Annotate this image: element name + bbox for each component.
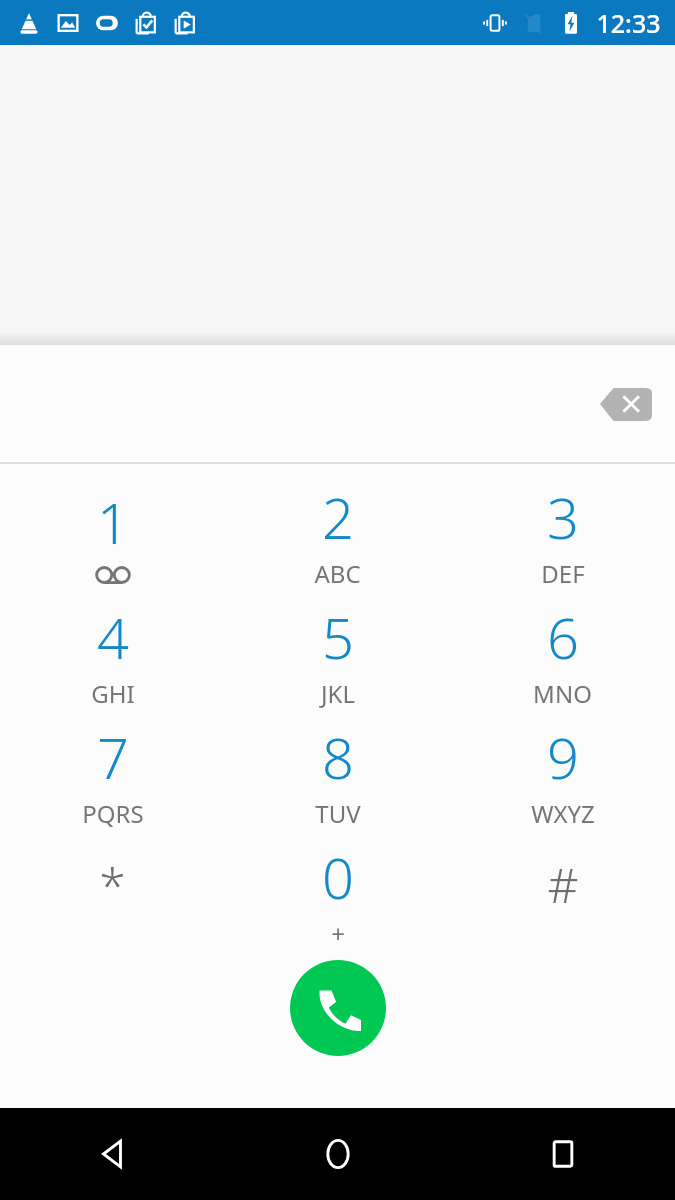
staticText: 5 [322, 599, 354, 675]
staticText: DEF [541, 557, 585, 590]
staticText: ABC [314, 557, 361, 590]
staticText: + [331, 917, 345, 950]
staticText: 1 [97, 484, 129, 560]
button[interactable]: 1 [0, 474, 225, 594]
button[interactable]: 4 [0, 594, 225, 714]
button[interactable]: 0 [225, 834, 450, 954]
staticText: 6 [547, 599, 579, 675]
staticText: 7 [97, 719, 129, 795]
button[interactable]: Recent apps [450, 1108, 675, 1200]
staticText: PQRS [82, 797, 144, 830]
staticText: # [547, 852, 579, 917]
button[interactable]: Backspace [595, 376, 657, 432]
button[interactable]: 2 [225, 474, 450, 594]
staticText: 12:33 [596, 6, 661, 40]
staticText: 2 [322, 479, 354, 555]
button[interactable]: 8 [225, 714, 450, 834]
button[interactable]: 6 [450, 594, 675, 714]
staticText: * [99, 852, 126, 917]
staticText: JKL [321, 677, 355, 710]
button[interactable]: Home [225, 1108, 450, 1200]
staticText: 3 [547, 479, 579, 555]
button[interactable]: 3 [450, 474, 675, 594]
staticText: 0 [322, 839, 354, 915]
staticText: 9 [547, 719, 579, 795]
staticText: 4 [97, 599, 129, 675]
button[interactable]: 7 [0, 714, 225, 834]
staticText: WXYZ [531, 797, 595, 830]
staticText: GHI [91, 677, 135, 710]
button[interactable]: Back [0, 1108, 225, 1200]
button[interactable]: 5 [225, 594, 450, 714]
staticText: 8 [322, 719, 354, 795]
staticText: TUV [315, 797, 361, 830]
button[interactable]: * [0, 834, 225, 954]
staticText: MNO [533, 677, 592, 710]
button[interactable]: 9 [450, 714, 675, 834]
button[interactable]: # [450, 834, 675, 954]
button[interactable]: Call [290, 960, 386, 1056]
